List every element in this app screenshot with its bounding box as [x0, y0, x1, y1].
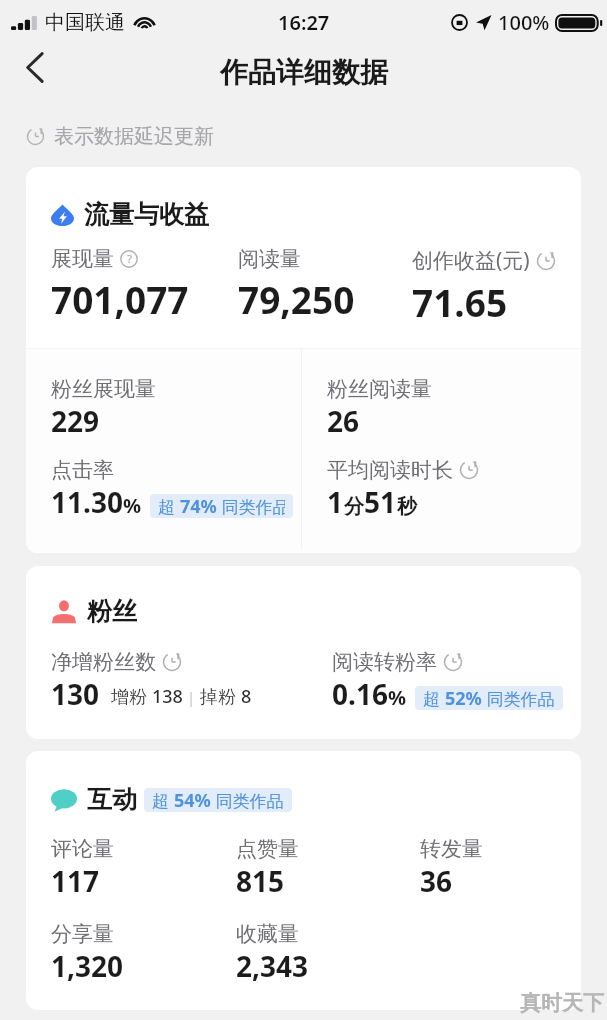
staticText: 点赞量	[236, 836, 299, 862]
staticText: 作品详细数据	[220, 55, 388, 90]
staticText: 1	[327, 483, 344, 521]
staticText: 阅读转粉率	[332, 649, 437, 675]
staticText: 阅读量	[238, 246, 301, 272]
button[interactable]: 粉丝	[26, 566, 581, 739]
staticText: 0.16	[332, 675, 388, 713]
button[interactable]: 互动	[26, 751, 581, 1010]
staticText: 74%	[180, 494, 217, 518]
staticText: 秒	[397, 494, 417, 519]
staticText: 51	[364, 483, 397, 521]
staticText: 平均阅读时长	[327, 457, 453, 483]
staticText: 8	[241, 684, 252, 709]
staticText: 229	[51, 402, 100, 440]
staticText: 创作收益(元)	[412, 246, 530, 275]
staticText: 超	[423, 687, 445, 710]
staticText: ?	[127, 251, 132, 267]
staticText: 超	[152, 789, 174, 812]
staticText: 100%	[498, 9, 550, 36]
staticText: 2,343	[236, 947, 309, 985]
button[interactable]: Back	[8, 44, 60, 91]
staticText: 79,250	[238, 274, 355, 324]
staticText: 分	[344, 494, 364, 519]
staticText: 815	[236, 862, 285, 900]
staticText: 130	[51, 675, 100, 713]
staticText: 同类作品	[482, 687, 555, 710]
staticText: 11.30	[51, 483, 123, 521]
staticText: 52%	[445, 686, 482, 710]
staticText: 表示数据延迟更新	[54, 124, 214, 149]
staticText: 粉丝	[87, 596, 137, 627]
staticText: |	[183, 687, 200, 707]
staticText: 117	[51, 862, 100, 900]
staticText: 138	[152, 684, 183, 709]
staticText: 54%	[174, 788, 211, 812]
staticText: 分享量	[51, 921, 114, 947]
staticText: 1,320	[51, 947, 124, 985]
staticText: 36	[420, 862, 453, 900]
staticText: %	[123, 492, 142, 519]
staticText: 同类作品	[217, 495, 285, 518]
staticText: 净增粉丝数	[51, 649, 156, 675]
staticText: 互动	[87, 784, 137, 815]
staticText: 中国联通	[45, 10, 125, 35]
staticText: 收藏量	[236, 921, 299, 947]
button[interactable]: 流量与收益	[26, 167, 581, 553]
staticText: 26	[327, 402, 360, 440]
staticText: 超	[158, 495, 180, 518]
staticText: 掉粉	[200, 684, 241, 709]
staticText: %	[388, 684, 407, 711]
staticText: 转发量	[420, 836, 483, 862]
staticText: 流量与收益	[84, 199, 209, 230]
staticText: 评论量	[51, 836, 114, 862]
staticText: 同类作品	[211, 789, 284, 812]
staticText: 71.65	[412, 277, 508, 327]
staticText: 展现量	[51, 246, 114, 272]
staticText: 点击率	[51, 457, 114, 483]
staticText: 粉丝展现量	[51, 376, 156, 402]
staticText: 粉丝阅读量	[327, 376, 432, 402]
staticText: 真时天下	[520, 990, 604, 1016]
staticText: 701,077	[51, 274, 189, 324]
staticText: 16:27	[278, 9, 330, 36]
staticText: 增粉	[111, 684, 152, 709]
